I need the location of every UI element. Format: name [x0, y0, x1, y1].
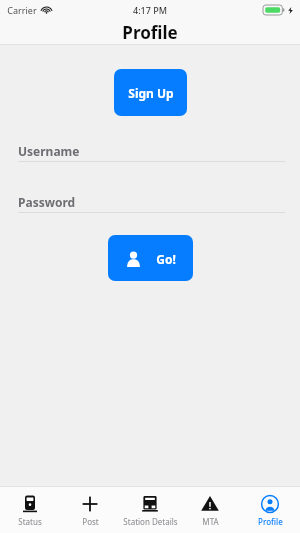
staticText: Password: [18, 194, 76, 210]
staticText: Sign Up: [128, 85, 174, 101]
button[interactable]: Go!: [108, 235, 193, 281]
button[interactable]: MTA: [180, 487, 240, 533]
staticText: Station Details: [123, 516, 178, 527]
button[interactable]: Username: [0, 141, 300, 161]
button[interactable]: Sign Up: [114, 69, 187, 116]
staticText: Carrier: [7, 4, 37, 16]
staticText: Profile: [122, 21, 178, 44]
button[interactable]: Status: [0, 487, 60, 533]
staticText: 4:17 PM: [133, 4, 167, 16]
button[interactable]: Post: [60, 487, 120, 533]
staticText: Post: [82, 516, 99, 527]
button[interactable]: Profile: [240, 487, 300, 533]
button[interactable]: Password: [0, 192, 300, 212]
staticText: MTA: [202, 516, 219, 527]
staticText: Username: [18, 143, 80, 159]
staticText: Profile: [258, 516, 283, 527]
staticText: Status: [18, 516, 42, 527]
staticText: Go!: [156, 251, 176, 267]
button[interactable]: Station Details: [120, 487, 180, 533]
